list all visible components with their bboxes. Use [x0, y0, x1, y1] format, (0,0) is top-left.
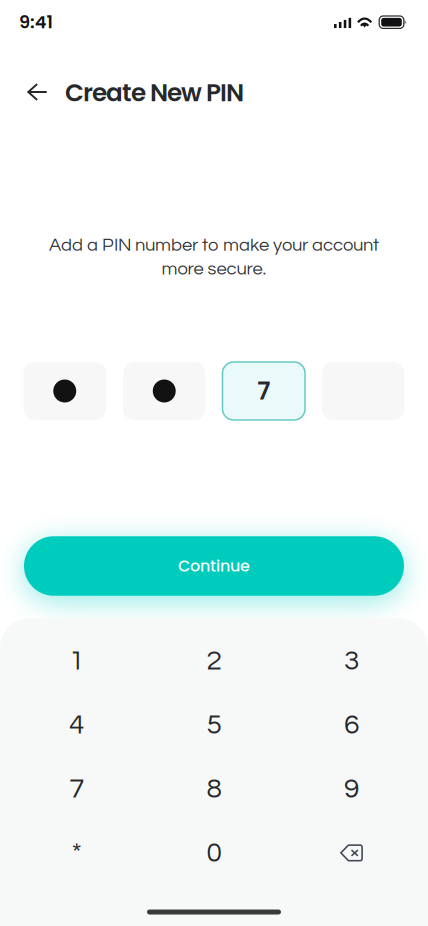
staticText: 2	[206, 647, 221, 675]
button[interactable]: 8	[145, 757, 283, 821]
staticText: 8	[206, 775, 221, 803]
button[interactable]: 4	[8, 693, 145, 757]
button[interactable]: 7	[8, 757, 145, 821]
button[interactable]: Back	[15, 71, 60, 113]
button[interactable]: 0	[145, 821, 283, 885]
staticText: 7	[69, 775, 84, 803]
button[interactable]: 1	[8, 629, 145, 693]
button[interactable]: 2	[145, 629, 283, 693]
staticText: 5	[206, 711, 221, 739]
button[interactable]: 6	[283, 693, 420, 757]
button[interactable]: Continue	[24, 536, 404, 596]
button[interactable]: 3	[283, 629, 420, 693]
button[interactable]: 9	[283, 757, 420, 821]
button[interactable]: 5	[145, 693, 283, 757]
staticText: Continue	[178, 555, 250, 577]
staticText: more secure.	[161, 259, 266, 278]
staticText: 0	[206, 839, 221, 867]
staticText: 4	[69, 711, 84, 739]
staticText: 1	[69, 647, 84, 675]
staticText: Create New PIN	[65, 75, 244, 110]
staticText: 6	[344, 711, 359, 739]
staticText: 3	[344, 647, 359, 675]
staticText: 9	[344, 775, 359, 803]
button[interactable]: *	[8, 821, 145, 885]
staticText: 7	[257, 374, 270, 408]
staticText: Add a PIN number to make your account	[49, 235, 379, 254]
staticText: *	[71, 839, 81, 867]
staticText: 9:41	[19, 10, 52, 34]
button[interactable]: Delete	[283, 821, 420, 885]
